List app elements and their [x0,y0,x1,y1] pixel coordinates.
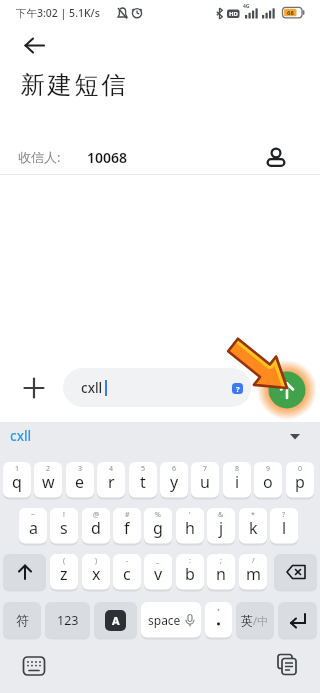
staticText: r [108,471,115,493]
button[interactable]: t [129,462,157,498]
staticText: 9 [266,464,271,474]
button[interactable]: z [50,554,78,590]
button[interactable]: f [113,508,141,544]
button[interactable]: d [82,508,110,544]
button[interactable]: 符 [3,602,41,638]
staticText: ( [63,556,66,566]
staticText: : [189,556,191,566]
button[interactable]: h [176,508,204,544]
staticText: 1 [15,464,20,474]
button[interactable]: cxll [0,422,22,440]
button[interactable]: l [270,508,298,544]
staticText: z [60,563,68,585]
staticText: e [75,471,85,493]
button[interactable]: g [144,508,172,544]
button[interactable]: cxll [63,368,251,407]
staticText: f [124,517,130,539]
button[interactable] [264,143,288,169]
staticText: / [252,556,255,566]
staticText: 3 [78,464,83,474]
staticText: d [91,517,101,539]
staticText: 4 [109,464,114,474]
button[interactable]: b [176,554,204,590]
button[interactable]: s [50,508,78,544]
staticText: - [126,556,129,566]
button[interactable]: space [141,602,201,638]
button[interactable] [16,32,52,60]
button[interactable]: p [286,462,314,498]
staticText: m [246,563,261,585]
staticText: 4G [243,3,250,10]
staticText: ' [189,510,191,520]
button[interactable] [288,433,302,441]
staticText: v [154,563,163,585]
button[interactable] [205,602,232,638]
staticText: 5 [141,464,146,474]
staticText: @ [93,510,100,520]
staticText: t [140,471,146,493]
staticText: HD [229,10,238,18]
staticText: o [263,471,273,493]
button[interactable] [274,652,300,678]
staticText: l [282,517,287,539]
staticText: n [216,563,226,585]
button[interactable] [3,554,46,590]
staticText: /中 [253,613,269,628]
button[interactable]: x [82,554,110,590]
button[interactable]: w [34,462,62,498]
staticText: w [42,471,55,493]
staticText: c [123,563,131,585]
staticText: j [219,517,224,539]
staticText: 新建短信 [19,70,127,100]
staticText: ? [282,510,286,520]
button[interactable]: q [3,462,31,498]
staticText: # [125,510,130,520]
button[interactable]: n [207,554,235,590]
staticText: 10068 [87,148,128,167]
button[interactable]: m [239,554,267,590]
button[interactable] [18,372,50,404]
staticText: 0 [298,464,303,474]
staticText: 符 [16,612,29,628]
button[interactable]: 123 [45,602,90,638]
staticText: 6 [172,464,177,474]
staticText: a [29,517,38,539]
staticText: k [249,517,258,539]
staticText: g [153,517,163,539]
staticText: i [235,471,240,493]
button[interactable]: 英 [236,602,274,638]
button[interactable] [256,359,318,421]
button[interactable]: e [66,462,94,498]
staticText: ! [63,510,65,520]
button[interactable] [274,554,317,590]
staticText: A [112,613,120,628]
staticText: y [170,471,179,493]
staticText: x [92,563,101,585]
staticText: _ [156,556,160,566]
staticText: ~ [31,510,36,520]
button[interactable]: y [160,462,188,498]
button[interactable]: a [19,508,47,544]
button[interactable] [278,602,317,638]
staticText: 下午3:02 | 5.1K/s [16,6,100,20]
staticText: * [251,510,255,520]
button[interactable]: u [191,462,219,498]
button[interactable]: o [254,462,282,498]
staticText: q [12,471,22,493]
button[interactable]: i [223,462,251,498]
button[interactable]: A [94,602,137,638]
staticText: cxll [81,379,103,397]
button[interactable]: v [144,554,172,590]
staticText: s [60,517,68,539]
staticText: % [155,510,161,520]
button[interactable]: r [97,462,125,498]
staticText: 2 [46,464,51,474]
button[interactable]: c [113,554,141,590]
button[interactable]: j [207,508,235,544]
button[interactable]: k [239,508,267,544]
staticText: 8 [235,464,240,474]
staticText: h [185,517,195,539]
staticText: 7 [203,464,208,474]
button[interactable] [22,654,46,678]
staticText: ) [95,556,98,566]
